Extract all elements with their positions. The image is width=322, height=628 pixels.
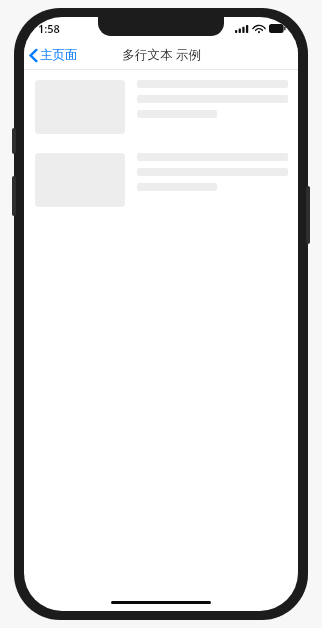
staticText: 1:58 (38, 21, 60, 36)
staticText: 多行文本 示例 (122, 46, 201, 63)
button[interactable] (24, 80, 298, 134)
button[interactable] (24, 153, 298, 207)
button[interactable]: 主页面 (24, 44, 84, 66)
staticText: 主页面 (40, 47, 78, 63)
other: Home indicator (111, 601, 211, 604)
